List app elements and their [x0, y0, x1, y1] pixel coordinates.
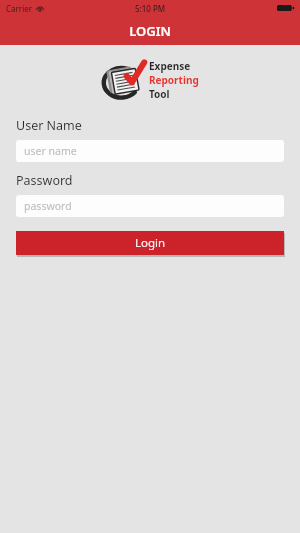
- staticText: Carrier: [6, 3, 33, 14]
- staticText: Login: [135, 235, 166, 251]
- button[interactable]: Login: [16, 231, 284, 255]
- staticText: Reporting: [149, 73, 199, 87]
- staticText: 5:10 PM: [135, 3, 166, 14]
- button[interactable]: password: [16, 195, 284, 217]
- staticText: LOGIN: [129, 22, 171, 40]
- staticText: password: [24, 199, 72, 213]
- staticText: Expense: [149, 59, 191, 73]
- staticText: User Name: [16, 117, 82, 134]
- staticText: Password: [16, 172, 73, 189]
- staticText: Tool: [149, 87, 170, 101]
- staticText: user name: [24, 144, 77, 158]
- button[interactable]: user name: [16, 140, 284, 162]
